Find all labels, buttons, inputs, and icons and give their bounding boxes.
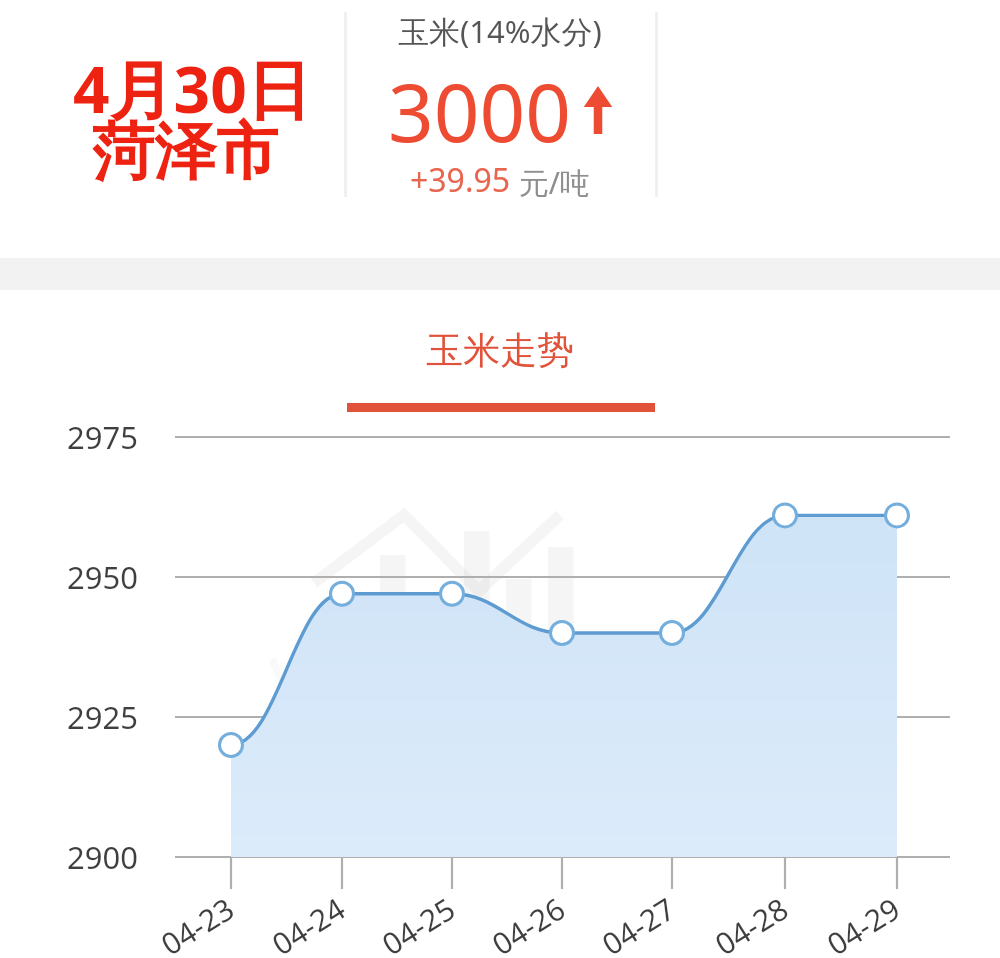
button[interactable]: 玉米价格走势 <box>0 0 1000 958</box>
